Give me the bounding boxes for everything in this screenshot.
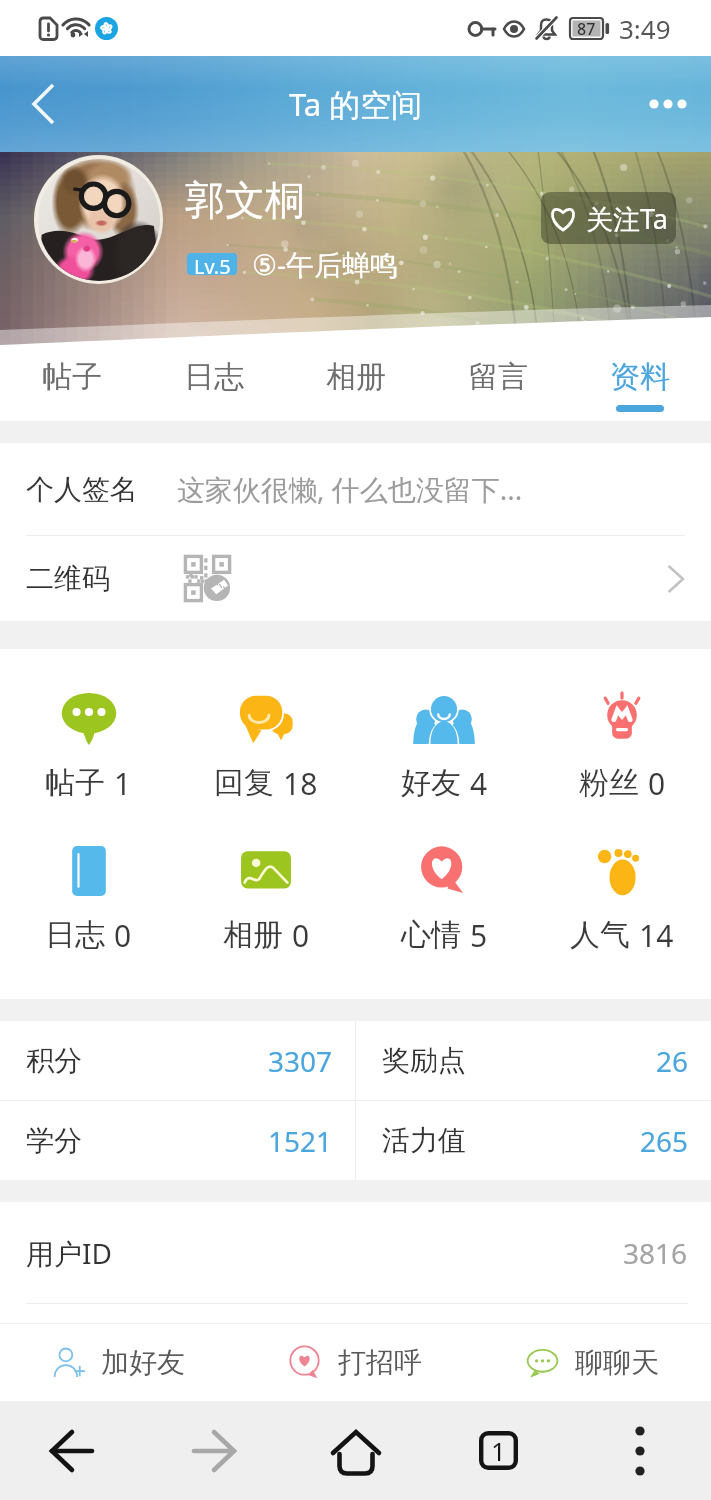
button[interactable]: 回复 (177, 688, 355, 803)
staticText: 回复 (214, 764, 274, 802)
button[interactable]: 人气 (533, 840, 711, 955)
button[interactable]: Recent apps: 1 (427, 1401, 569, 1500)
staticText: 积分 (26, 1043, 82, 1078)
staticText: 聊聊天 (575, 1345, 659, 1380)
button[interactable]: 资料 (569, 346, 711, 421)
staticText: ⑤-午后蝉鸣 (252, 245, 399, 283)
button[interactable]: Back (0, 1401, 143, 1500)
staticText: 这家伙很懒, 什么也没留下... (177, 470, 523, 508)
staticText: 打招呼 (338, 1345, 422, 1380)
staticText: 0 (114, 915, 132, 955)
staticText: 人气 (570, 916, 630, 954)
button[interactable]: 聊聊天 (474, 1324, 711, 1401)
button[interactable]: 帖子 (0, 346, 143, 421)
staticText: 学分 (26, 1123, 82, 1158)
staticText: 活力值 (382, 1123, 466, 1158)
button[interactable]: 帖子 (0, 688, 177, 803)
button[interactable]: More (569, 1401, 711, 1500)
button[interactable]: 积分 (0, 1021, 355, 1100)
button[interactable]: 二维码 (0, 536, 711, 621)
staticText: 加好友 (101, 1345, 185, 1380)
button[interactable]: 相册 (285, 346, 427, 421)
staticText: 3:49 (619, 11, 671, 46)
button[interactable]: Forward (143, 1401, 285, 1500)
button[interactable]: Avatar (34, 155, 163, 284)
button[interactable]: 留言 (427, 346, 569, 421)
staticText: 1 (114, 763, 132, 803)
button[interactable]: 日志 (0, 840, 177, 955)
staticText: 3307 (268, 1042, 333, 1080)
staticText: 好友 (401, 764, 461, 802)
staticText: Ta 的空间 (289, 83, 423, 125)
staticText: 3816 (623, 1234, 688, 1272)
button[interactable]: 个人签名 (0, 443, 711, 535)
button[interactable]: 相册 (177, 840, 355, 955)
button[interactable]: 粉丝 (533, 688, 711, 803)
staticText: 粉丝 (579, 764, 639, 802)
button[interactable]: 好友 (355, 688, 533, 803)
button[interactable]: 用户ID (0, 1202, 711, 1303)
staticText: 5 (470, 915, 488, 955)
button[interactable]: 奖励点 (356, 1021, 711, 1100)
staticText: Lv.5 (194, 253, 231, 275)
staticText: 0 (292, 915, 310, 955)
staticText: 心情 (401, 916, 461, 954)
staticText: 资料 (610, 358, 670, 396)
staticText: 1521 (268, 1122, 333, 1160)
staticText: 二维码 (26, 561, 110, 596)
staticText: 87 (577, 18, 596, 40)
button[interactable]: 关注Ta (541, 192, 676, 244)
staticText: 26 (656, 1042, 689, 1080)
button[interactable]: 学分 (0, 1101, 355, 1180)
staticText: 相册 (326, 358, 386, 396)
staticText: 14 (639, 915, 674, 955)
staticText: 关注Ta (586, 200, 668, 237)
staticText: 留言 (468, 358, 528, 396)
button[interactable]: Home (285, 1401, 427, 1500)
staticText: 相册 (223, 916, 283, 954)
staticText: 日志 (45, 916, 105, 954)
staticText: 0 (648, 763, 666, 803)
button[interactable]: 加好友 (0, 1324, 237, 1401)
staticText: 1 (491, 1433, 506, 1468)
staticText: 4 (470, 763, 488, 803)
staticText: 帖子 (42, 358, 102, 396)
staticText: 265 (640, 1122, 689, 1160)
staticText: 用户ID (26, 1234, 112, 1272)
button[interactable]: 日志 (143, 346, 285, 421)
staticText: 个人签名 (26, 472, 138, 507)
button[interactable]: Back (12, 73, 74, 135)
button[interactable]: 心情 (355, 840, 533, 955)
button[interactable]: More options (639, 75, 697, 133)
staticText: 日志 (184, 358, 244, 396)
button[interactable]: 活力值 (356, 1101, 711, 1180)
staticText: 18 (283, 763, 318, 803)
staticText: 帖子 (45, 764, 105, 802)
staticText: 郭文桐 (185, 175, 305, 225)
staticText: 奖励点 (382, 1043, 466, 1078)
button[interactable]: 打招呼 (237, 1324, 474, 1401)
